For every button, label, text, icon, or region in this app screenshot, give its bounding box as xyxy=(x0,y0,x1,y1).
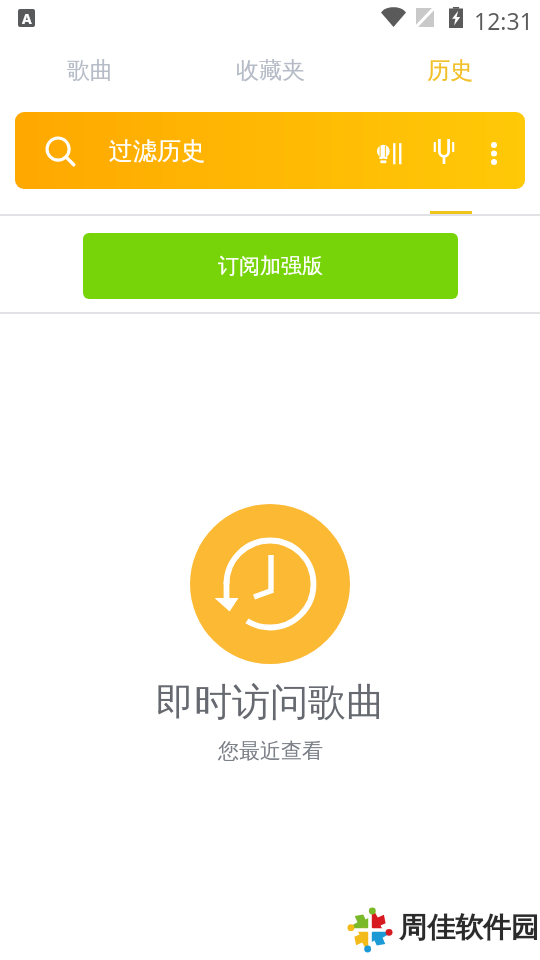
button[interactable]: More options xyxy=(467,126,521,180)
staticText: 订阅加强版 xyxy=(218,253,323,279)
staticText: 12:31 xyxy=(474,5,533,36)
button[interactable]: Tuner xyxy=(417,125,471,179)
staticText: 周佳软件园 xyxy=(399,910,539,945)
button[interactable]: 歌曲 xyxy=(0,39,180,101)
button[interactable]: 历史 xyxy=(360,39,540,101)
button[interactable]: Equalizer xyxy=(363,126,417,180)
staticText: A xyxy=(22,9,32,27)
staticText: 历史 xyxy=(427,56,473,85)
button[interactable]: 过滤历史 xyxy=(15,112,525,189)
staticText: 即时访问歌曲 xyxy=(156,678,384,726)
button[interactable]: 收藏夹 xyxy=(180,39,360,101)
staticText: 收藏夹 xyxy=(236,56,305,85)
button[interactable]: 订阅加强版 xyxy=(83,233,458,299)
staticText: 您最近查看 xyxy=(218,738,323,764)
staticText: 过滤历史 xyxy=(109,136,205,166)
staticText: 歌曲 xyxy=(67,56,113,85)
